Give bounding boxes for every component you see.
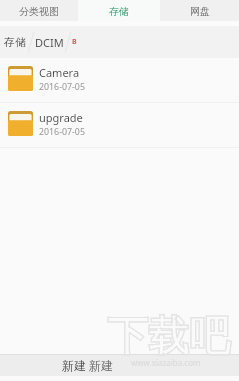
- button[interactable]: Camera: [0, 58, 239, 102]
- button[interactable]: upgrade: [0, 103, 239, 147]
- button[interactable]: 分类视图: [0, 0, 78, 21]
- button[interactable]: 存储: [2, 26, 28, 58]
- staticText: DCIM: [35, 35, 64, 50]
- staticText: 下载吧: [107, 311, 230, 363]
- staticText: Camera: [39, 65, 80, 80]
- staticText: 新建: [62, 358, 86, 373]
- staticText: upgrade: [39, 110, 83, 125]
- staticText: 2016-07-05: [39, 126, 85, 138]
- staticText: 存储: [4, 35, 26, 49]
- button[interactable]: 新建: [89, 355, 113, 376]
- button[interactable]: B: [71, 26, 78, 58]
- button[interactable]: 新建: [62, 355, 86, 376]
- staticText: B: [72, 37, 77, 47]
- staticText: 2016-07-05: [39, 81, 85, 93]
- staticText: 分类视图: [19, 5, 59, 18]
- button[interactable]: DCIM: [34, 26, 65, 58]
- staticText: 网盘: [190, 5, 210, 18]
- button[interactable]: 网盘: [160, 0, 239, 21]
- button[interactable]: 存储: [78, 0, 160, 21]
- staticText: www.xiazaiba.com: [131, 357, 201, 368]
- staticText: 存储: [109, 5, 129, 18]
- staticText: 新建: [89, 358, 113, 373]
